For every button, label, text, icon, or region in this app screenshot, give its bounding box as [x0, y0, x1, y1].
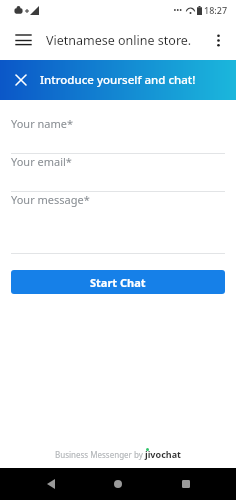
staticText: Start Chat [90, 275, 146, 290]
button[interactable]: Back [34, 468, 68, 500]
button[interactable]: More options [204, 26, 232, 54]
button[interactable]: Start Chat [11, 270, 225, 294]
staticText: 18:27 [204, 4, 228, 16]
staticText: jivochat [145, 448, 181, 460]
staticText: Your message* [11, 192, 90, 207]
staticText: Introduce yourself and chat! [40, 72, 196, 88]
staticText: Vietnamese online store. Go… [46, 32, 202, 49]
button[interactable]: Home [101, 468, 135, 500]
staticText: Business Messenger by [55, 449, 145, 460]
button[interactable]: Your name* [0, 116, 236, 154]
button[interactable]: Recent apps [169, 468, 203, 500]
button[interactable]: Close [8, 67, 34, 93]
staticText: Your name* [11, 116, 74, 131]
button[interactable]: Your message* [0, 192, 236, 254]
button[interactable]: Open navigation menu [8, 25, 38, 55]
staticText: Your email* [11, 154, 72, 169]
button[interactable]: Your email* [0, 154, 236, 192]
